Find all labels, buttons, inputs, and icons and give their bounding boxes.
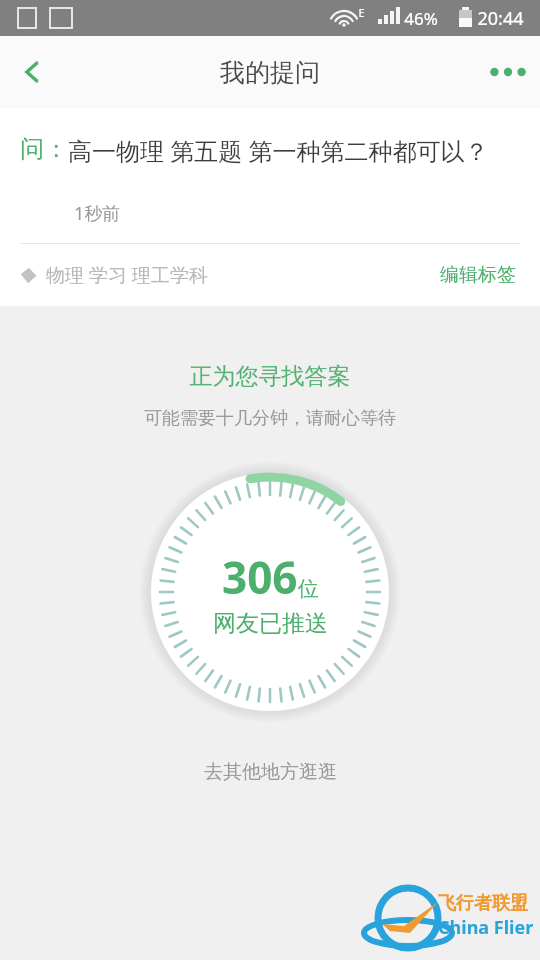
staticText: 位 bbox=[298, 576, 319, 602]
staticText: China Flier bbox=[438, 915, 534, 940]
staticText: 编辑标签 bbox=[440, 263, 516, 287]
staticText: 物理 学习 理工学科 bbox=[46, 262, 208, 288]
staticText: 正为您寻找答案 bbox=[0, 362, 540, 391]
button[interactable]: Back bbox=[0, 36, 64, 108]
staticText: 网友已推送 bbox=[213, 609, 328, 638]
button[interactable]: 编辑标签 bbox=[436, 259, 520, 291]
button[interactable]: More options bbox=[476, 36, 540, 108]
staticText: 306 bbox=[222, 547, 298, 607]
staticText: 飞行者联盟 bbox=[438, 892, 528, 915]
staticText: 问： bbox=[20, 134, 68, 164]
staticText: 46% bbox=[404, 7, 438, 30]
staticText: 去其他地方逛逛 bbox=[204, 760, 337, 784]
staticText: 我的提问 bbox=[0, 57, 540, 88]
staticText: 20:44 bbox=[477, 6, 524, 31]
staticText: E bbox=[358, 5, 365, 20]
staticText: 1秒前 bbox=[74, 201, 121, 226]
staticText: 可能需要十几分钟，请耐心等待 bbox=[0, 407, 540, 430]
button[interactable]: 去其他地方逛逛 bbox=[0, 750, 540, 794]
staticText: 高一物理 第五题 第一种第二种都可以？ bbox=[68, 134, 489, 167]
